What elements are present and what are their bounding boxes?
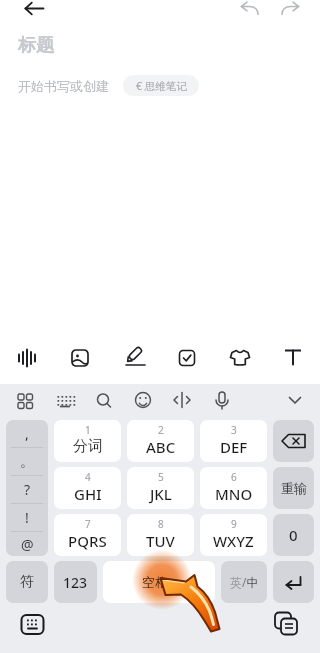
button[interactable] [279, 1, 301, 17]
button[interactable]: 8 [127, 514, 194, 556]
button[interactable] [169, 338, 205, 374]
button[interactable] [211, 390, 233, 410]
button[interactable]: 9 [200, 514, 267, 556]
staticText: TUV [146, 531, 175, 551]
button[interactable]: 6 [200, 467, 267, 509]
button[interactable]: 4 [54, 467, 121, 509]
staticText: ? [24, 480, 31, 499]
staticText: JKL [150, 484, 172, 504]
button[interactable] [273, 420, 314, 462]
staticText: PQRS [68, 531, 107, 551]
staticText: GHI [74, 484, 102, 504]
staticText: 符 [20, 573, 34, 591]
button[interactable]: 符 [6, 561, 48, 603]
staticText: MNO [215, 484, 253, 504]
staticText: 3 [231, 423, 237, 437]
button[interactable]: 0 [273, 514, 314, 556]
button[interactable]: 1 [54, 420, 121, 462]
button[interactable] [14, 390, 36, 410]
staticText: € 思维笔记 [136, 79, 187, 93]
button[interactable] [222, 338, 258, 374]
staticText: 分词 [73, 437, 103, 456]
staticText: DEF [220, 437, 248, 457]
staticText: 4 [85, 470, 91, 484]
button[interactable]: 英/中 [221, 561, 267, 603]
button[interactable] [274, 612, 299, 636]
staticText: 英/中 [230, 574, 259, 590]
button[interactable] [21, 613, 44, 636]
button[interactable] [273, 561, 314, 603]
staticText: 0 [289, 525, 298, 545]
button[interactable] [239, 1, 261, 17]
staticText: 1 [85, 423, 91, 437]
button[interactable] [9, 338, 45, 374]
button[interactable]: € 思维笔记 [123, 75, 199, 96]
staticText: , [25, 424, 29, 443]
button[interactable]: 2 [127, 420, 194, 462]
button[interactable] [62, 338, 98, 374]
staticText: 开始书写或创建 [18, 78, 109, 94]
button[interactable]: 5 [127, 467, 194, 509]
staticText: @ [21, 535, 34, 554]
button[interactable] [171, 390, 193, 410]
staticText: 8 [158, 517, 164, 531]
button[interactable]: , [6, 420, 48, 556]
staticText: 7 [85, 517, 91, 531]
button[interactable] [132, 390, 154, 410]
staticText: ABC [146, 437, 176, 457]
staticText: 重输 [281, 480, 307, 496]
button[interactable] [115, 338, 151, 374]
staticText: ! [25, 508, 29, 527]
button[interactable]: 重输 [273, 467, 314, 509]
staticText: 。 [20, 453, 34, 471]
staticText: 2 [158, 423, 164, 437]
staticText: 空格 [142, 574, 168, 590]
staticText: WXYZ [213, 531, 254, 551]
button[interactable]: 3 [200, 420, 267, 462]
staticText: 123 [63, 573, 88, 592]
staticText: 6 [231, 470, 237, 484]
button[interactable] [93, 390, 115, 410]
button[interactable] [275, 338, 311, 374]
staticText: 5 [158, 470, 164, 484]
staticText: 标题 [18, 34, 54, 57]
staticText: 9 [231, 517, 237, 531]
button[interactable]: 123 [54, 561, 97, 603]
button[interactable]: 空格 [103, 561, 215, 603]
button[interactable] [54, 390, 76, 410]
button[interactable] [284, 390, 306, 410]
button[interactable] [22, 0, 48, 20]
button[interactable]: 7 [54, 514, 121, 556]
